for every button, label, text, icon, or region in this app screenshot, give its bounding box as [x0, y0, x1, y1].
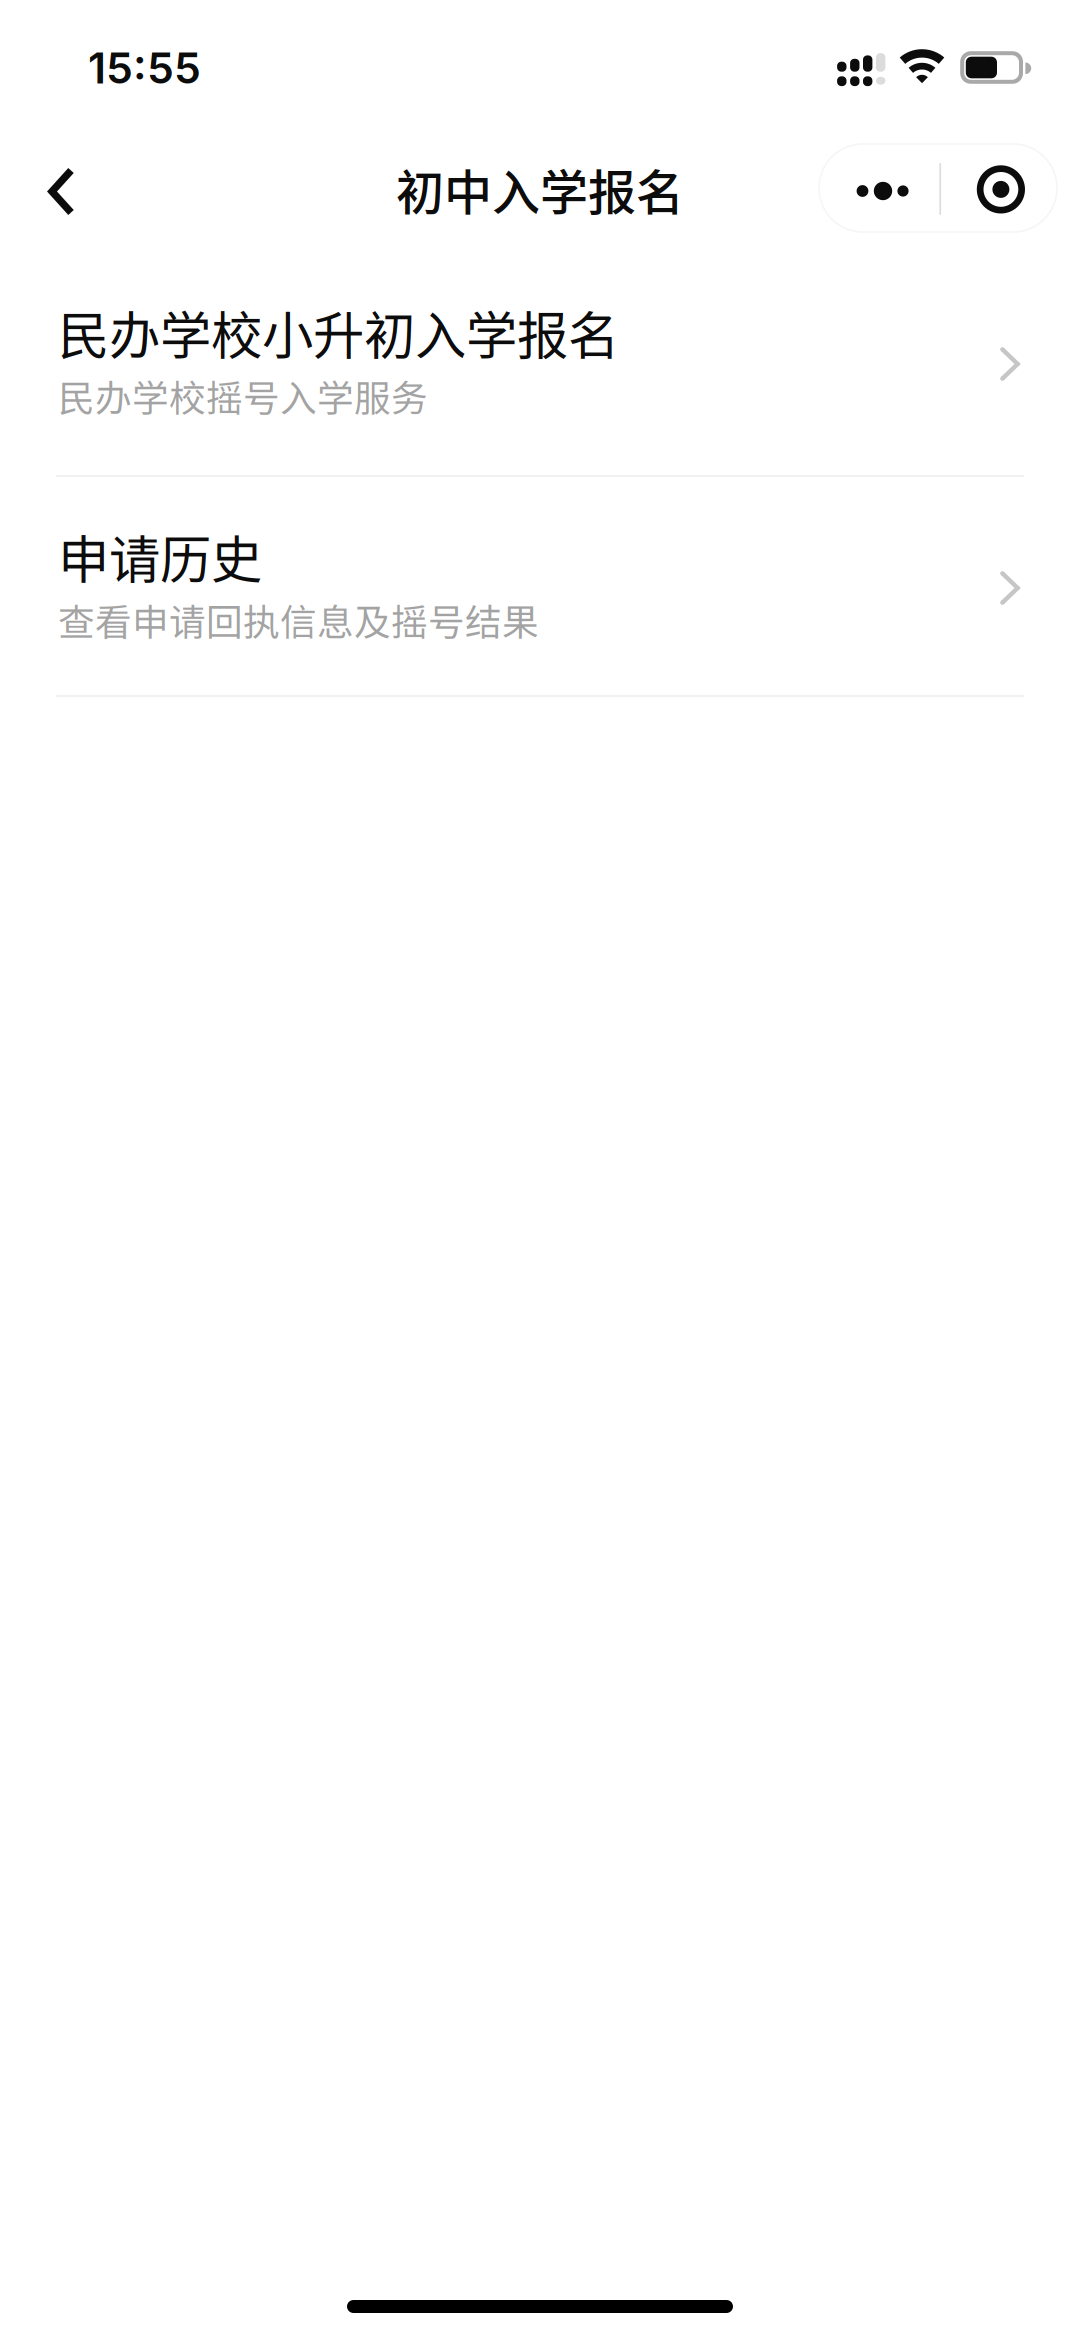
staticText: 15:55	[88, 42, 201, 94]
button[interactable]: More options	[819, 144, 939, 232]
staticText: 查看申请回执信息及摇号结果	[58, 593, 539, 646]
staticText: 申请历史	[58, 519, 262, 593]
button[interactable]: 民办学校小升初入学报名	[0, 246, 1080, 475]
button[interactable]: Back	[0, 118, 167, 240]
staticText: 民办学校小升初入学报名	[58, 295, 619, 369]
staticText: 初中入学报名	[396, 154, 684, 224]
button[interactable]: Close mini program	[939, 144, 1057, 232]
staticText: 民办学校摇号入学服务	[58, 369, 428, 422]
button[interactable]: 申请历史	[0, 477, 1080, 695]
